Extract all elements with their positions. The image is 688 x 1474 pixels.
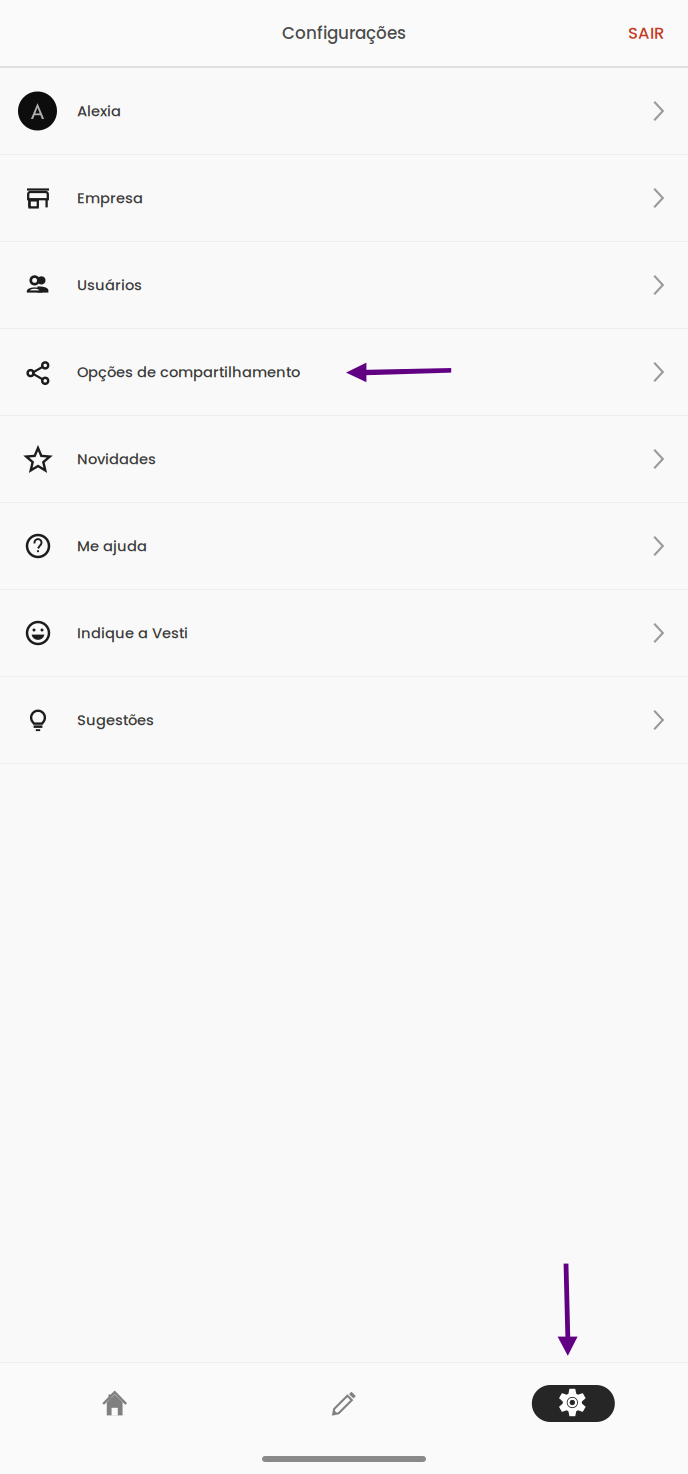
button[interactable]: Me ajuda [0,503,688,590]
button[interactable]: Home [0,1363,229,1444]
button[interactable]: Empresa [0,155,688,242]
staticText: Me ajuda [77,536,147,556]
button[interactable]: Usuários [0,242,688,329]
button[interactable]: Edit [229,1363,459,1444]
staticText: Empresa [77,188,143,208]
button[interactable]: Sugestões [0,677,688,764]
button[interactable]: Alexia [0,68,688,155]
button[interactable]: Novidades [0,416,688,503]
button[interactable]: Settings [459,1363,688,1444]
staticText: Configurações [282,21,406,45]
button[interactable]: SAIR [604,5,688,60]
staticText: Sugestões [77,710,154,730]
staticText: Indique a Vesti [77,623,188,643]
button[interactable]: Opções de compartilhamento [0,329,688,416]
staticText: Opções de compartilhamento [77,362,300,382]
staticText: SAIR [628,21,664,44]
staticText: Alexia [77,101,121,121]
staticText: Novidades [77,449,156,469]
staticText: Usuários [77,275,142,295]
button[interactable]: Indique a Vesti [0,590,688,677]
